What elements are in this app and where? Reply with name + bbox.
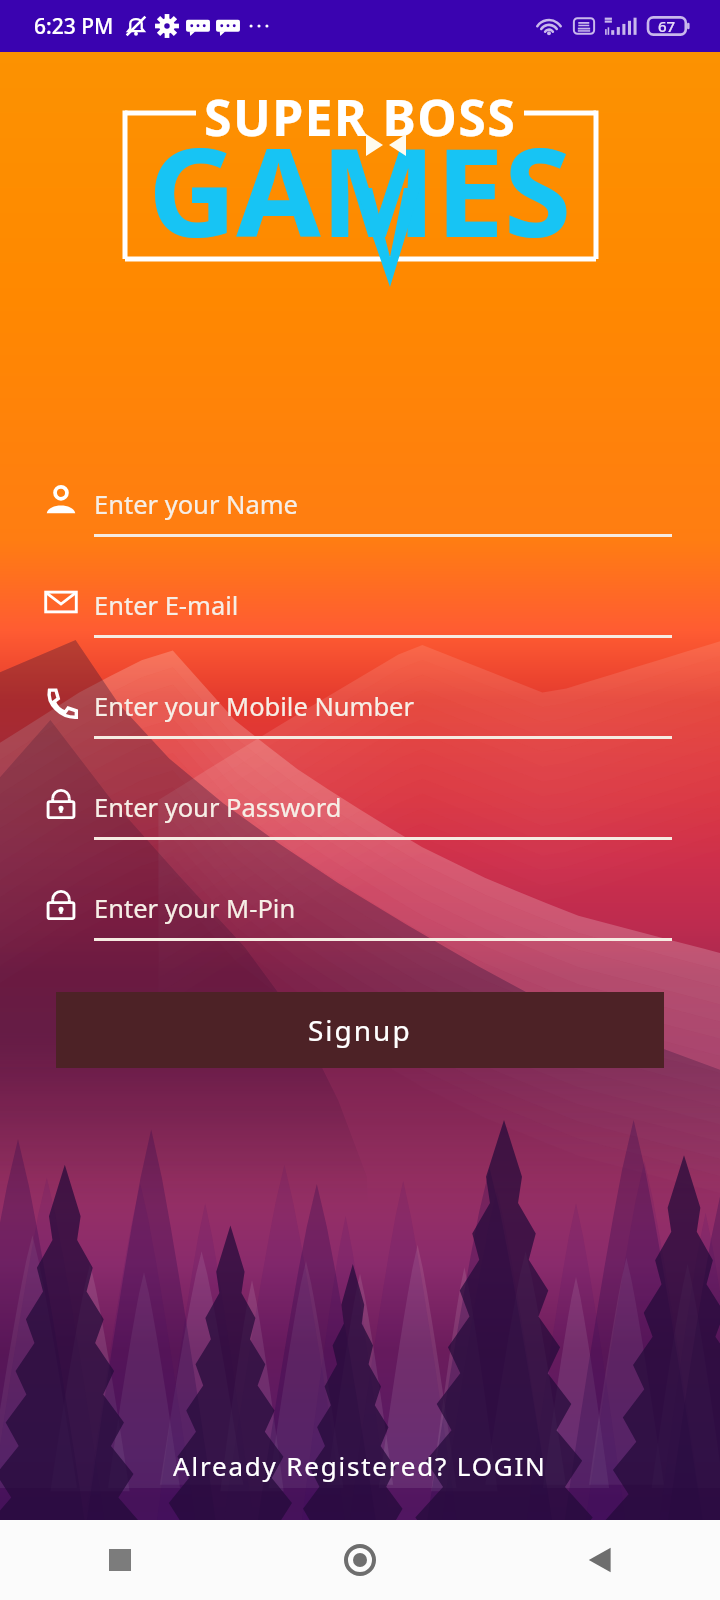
- staticText: Signup: [308, 1011, 412, 1049]
- staticText: 6:23 PM: [34, 12, 114, 41]
- staticText: 67: [658, 16, 676, 36]
- button[interactable]: Already Registered? LOGIN: [0, 1430, 720, 1500]
- button[interactable]: Signup: [56, 992, 664, 1068]
- button[interactable]: Recents: [0, 1520, 240, 1600]
- button[interactable]: Enter your M-Pin: [0, 874, 720, 975]
- staticText: Enter E-mail: [94, 588, 239, 623]
- button[interactable]: Back: [480, 1520, 720, 1600]
- staticText: Enter your Name: [94, 487, 298, 522]
- staticText: Enter your Password: [94, 790, 342, 825]
- staticText: Enter your Mobile Number: [94, 689, 415, 724]
- staticText: Enter your M-Pin: [94, 891, 296, 926]
- staticText: SUPER BOSS: [204, 83, 517, 151]
- button[interactable]: Enter your Mobile Number: [0, 672, 720, 773]
- staticText: GAMES: [148, 107, 572, 273]
- button[interactable]: Enter E-mail: [0, 571, 720, 672]
- staticText: Already Registered? LOGIN: [173, 1448, 547, 1483]
- button[interactable]: Enter your Password: [0, 773, 720, 874]
- button[interactable]: Enter your Name: [0, 470, 720, 571]
- button[interactable]: Home: [240, 1520, 480, 1600]
